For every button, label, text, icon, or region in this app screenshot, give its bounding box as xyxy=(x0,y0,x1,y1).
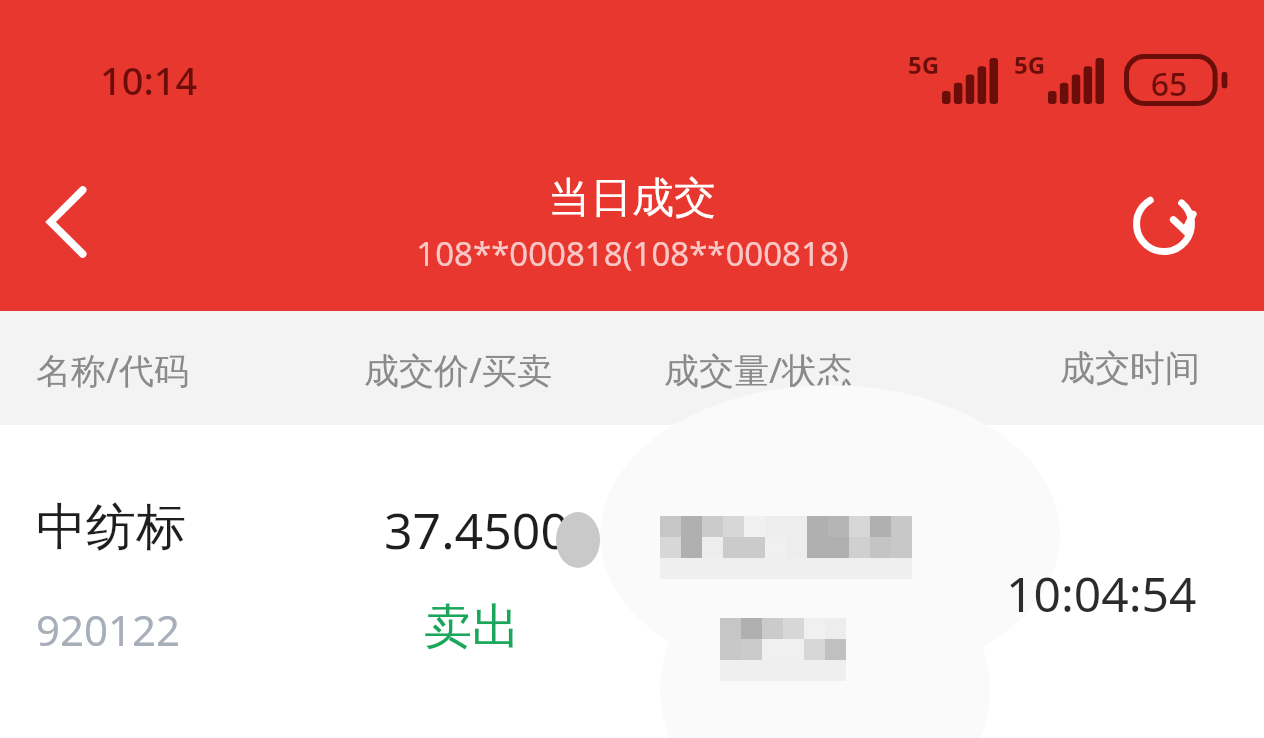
button[interactable]: Back xyxy=(18,172,118,272)
staticText: 10:04:54 xyxy=(1006,561,1197,626)
staticText: 920122 xyxy=(36,601,181,658)
staticText: 108**000818(108**000818) xyxy=(416,231,849,276)
button[interactable]: 中纺标 xyxy=(0,425,1264,738)
staticText: 5G xyxy=(1014,48,1046,81)
button[interactable]: Refresh xyxy=(1112,172,1216,276)
staticText: 当日成交 xyxy=(548,172,716,225)
staticText: 5G xyxy=(908,48,940,81)
staticText: 名称/代码 xyxy=(36,346,190,394)
staticText: 中纺标 xyxy=(36,496,186,559)
staticText: 10:14 xyxy=(100,54,198,106)
staticText: 成交时间 xyxy=(1060,346,1200,390)
staticText: 成交量/状态 xyxy=(664,346,853,394)
staticText: 卖出 xyxy=(424,597,520,657)
staticText: 37.4500 xyxy=(384,496,569,564)
staticText: 65 xyxy=(1122,62,1216,106)
staticText: 成交价/买卖 xyxy=(364,346,553,394)
